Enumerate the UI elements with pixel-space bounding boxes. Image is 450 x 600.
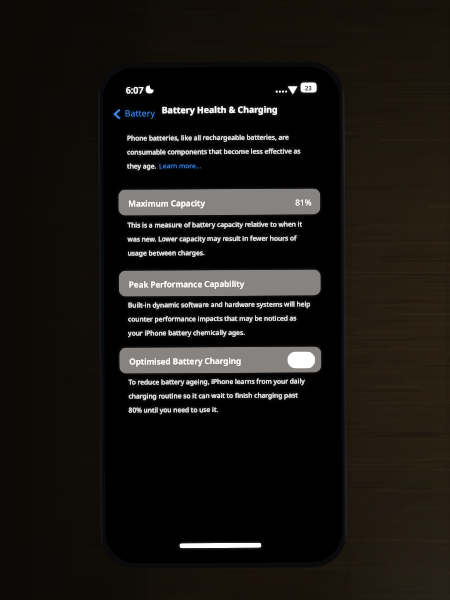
staticText: charging routine so it can wait to finis…	[128, 390, 299, 400]
staticText: Optimised Battery Charging	[129, 355, 241, 367]
staticText: Built-in dynamic software and hardware s…	[128, 299, 311, 310]
staticText: Battery Health & Charging	[162, 104, 278, 116]
staticText: Peak Performance Capability	[129, 278, 245, 290]
staticText: usage between charges.	[128, 248, 206, 258]
staticText: counter performance impacts that may be …	[128, 313, 297, 323]
staticText: counter performance impacts that may be …	[128, 313, 297, 323]
staticText: consumable components that become less e…	[127, 146, 301, 157]
staticText: Built-in dynamic software and hardware s…	[128, 299, 311, 310]
button[interactable]: Optimised Battery Charging	[119, 346, 321, 374]
staticText: 23	[305, 83, 313, 91]
button[interactable]: Maximum Capacity	[118, 188, 320, 216]
staticText: charging routine so it can wait to finis…	[128, 390, 299, 400]
button[interactable]: Learn more...	[159, 161, 202, 170]
staticText: This is a measure of battery capacity re…	[127, 219, 302, 230]
staticText: they age.	[127, 161, 157, 171]
staticText: Optimised Battery Charging	[129, 355, 241, 367]
staticText: This is a measure of battery capacity re…	[127, 219, 302, 230]
staticText: Phone batteries, like all rechargeable b…	[127, 133, 289, 143]
button[interactable]: Learn more...	[159, 161, 202, 170]
staticText: To reduce battery ageing, iPhone learns …	[128, 376, 305, 387]
staticText: was new. Lower capacity may result in fe…	[127, 233, 297, 243]
staticText: 6:07	[126, 83, 144, 96]
staticText: your iPhone battery chemically ages.	[128, 328, 245, 338]
button[interactable]: Optimised Battery Charging toggle	[287, 351, 315, 369]
button[interactable]: Peak Performance Capability	[119, 269, 321, 297]
button[interactable]: Optimised Battery Charging	[119, 346, 321, 374]
staticText: Battery	[125, 107, 156, 120]
staticText: 23	[305, 83, 313, 91]
button[interactable]: Peak Performance Capability	[119, 269, 321, 297]
staticText: they age.	[127, 161, 157, 171]
staticText: 81%	[295, 196, 312, 207]
button[interactable]: Optimised Battery Charging toggle	[287, 351, 315, 369]
staticText: usage between charges.	[128, 248, 206, 258]
staticText: Maximum Capacity	[128, 197, 205, 209]
staticText: 80% until you need to use it.	[129, 405, 219, 414]
button[interactable]: Battery	[111, 104, 159, 123]
staticText: 6:07	[126, 83, 144, 96]
staticText: Battery Health & Charging	[162, 104, 278, 116]
staticText: Maximum Capacity	[128, 197, 205, 209]
staticText: Phone batteries, like all rechargeable b…	[127, 133, 289, 143]
staticText: consumable components that become less e…	[127, 146, 301, 157]
staticText: 81%	[295, 196, 312, 207]
staticText: 80% until you need to use it.	[129, 405, 219, 414]
staticText: your iPhone battery chemically ages.	[128, 328, 245, 338]
button[interactable]: Battery	[111, 104, 159, 123]
staticText: Battery	[125, 107, 156, 120]
staticText: was new. Lower capacity may result in fe…	[127, 233, 297, 243]
staticText: Peak Performance Capability	[129, 278, 245, 290]
staticText: To reduce battery ageing, iPhone learns …	[128, 376, 305, 387]
button[interactable]: Maximum Capacity	[118, 188, 320, 216]
